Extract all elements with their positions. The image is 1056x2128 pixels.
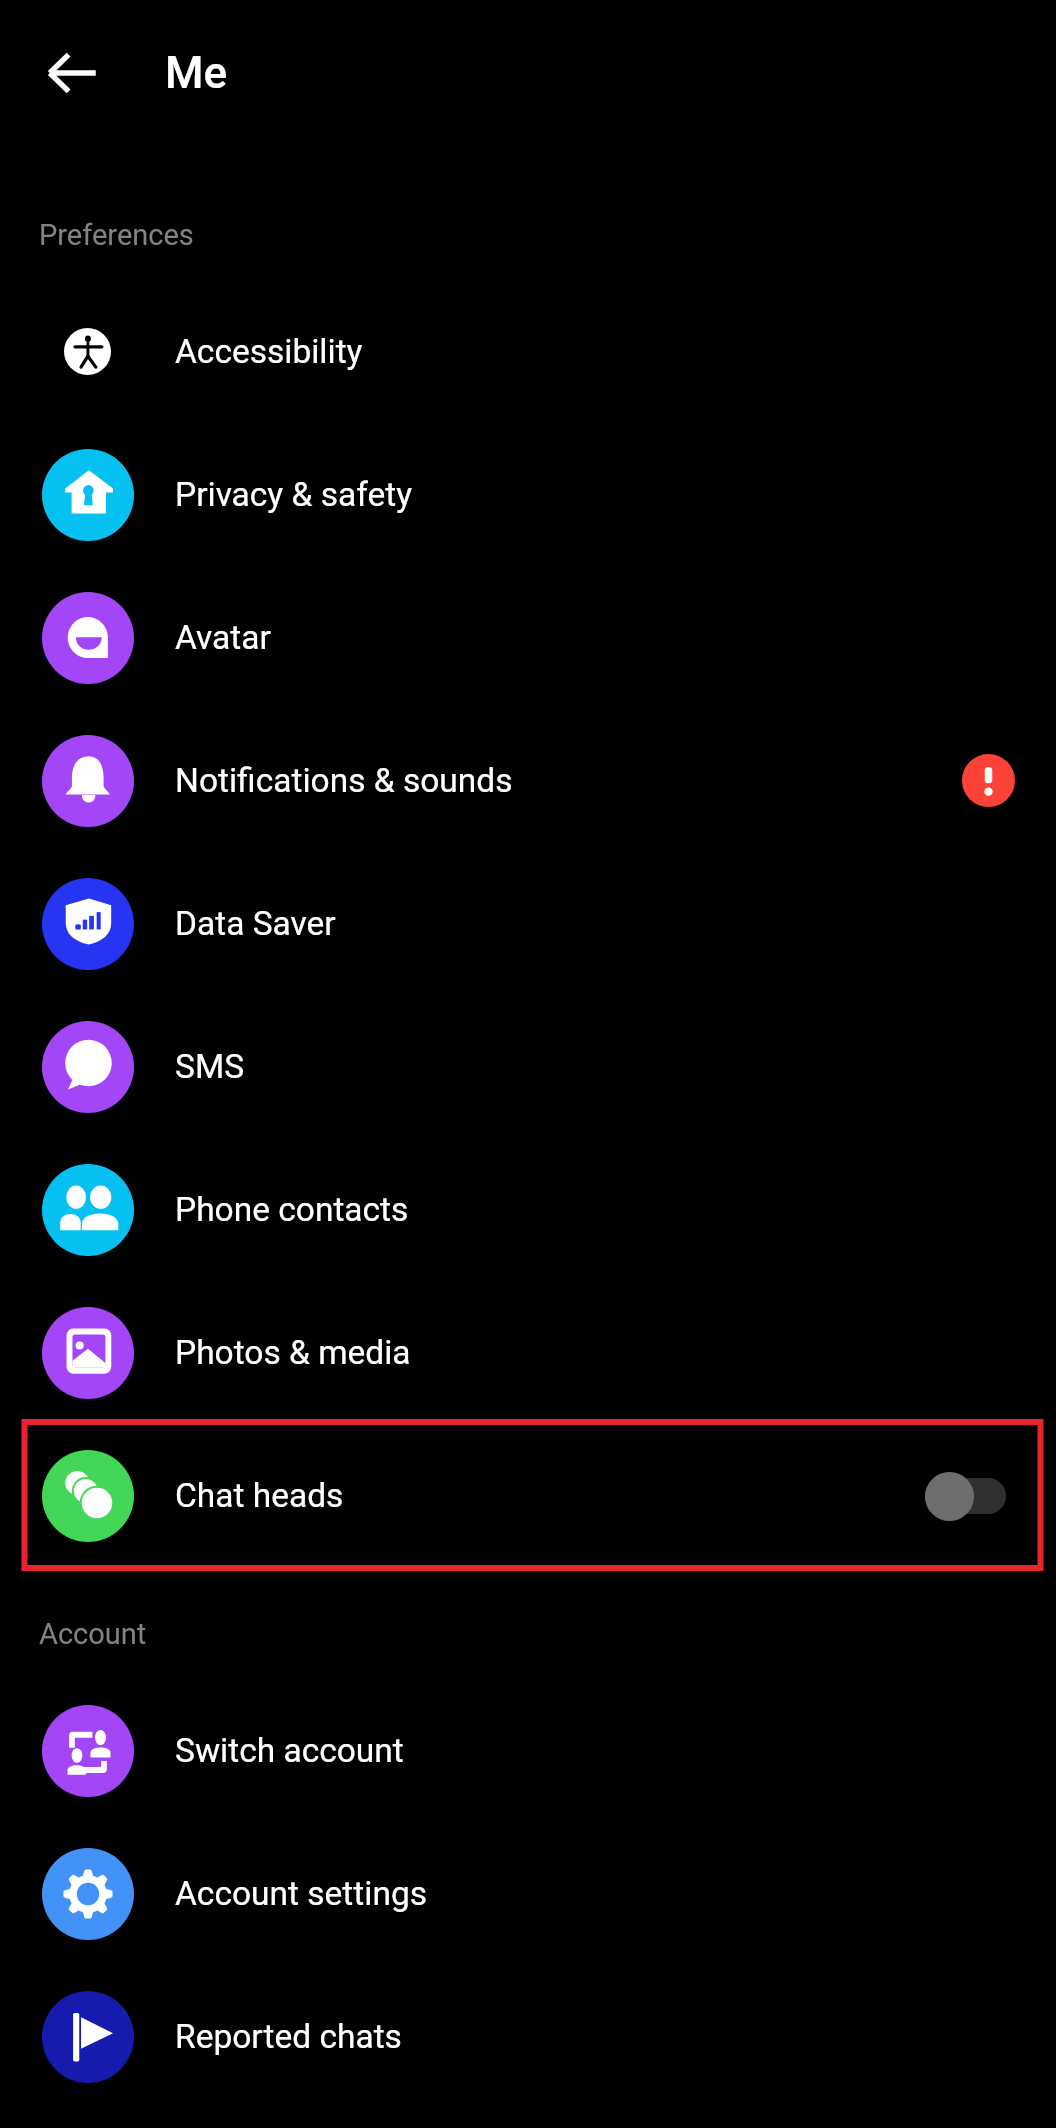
staticText: Accessibility — [175, 332, 363, 371]
button[interactable]: Back — [24, 27, 116, 119]
button[interactable]: Photos & media — [0, 1281, 1056, 1424]
button[interactable]: Reported chats — [0, 1965, 1056, 2108]
staticText: Switch account — [175, 1731, 404, 1770]
staticText: Data Saver — [175, 904, 336, 943]
staticText: Photos & media — [175, 1333, 411, 1372]
staticText: Notifications & sounds — [175, 761, 513, 800]
button[interactable]: Phone contacts — [0, 1138, 1056, 1281]
button[interactable]: Chat heads — [0, 1424, 1056, 1567]
button[interactable]: Privacy & safety — [0, 423, 1056, 566]
other: Warning — [962, 754, 1015, 807]
button[interactable]: Toggle chat heads — [925, 1471, 1006, 1521]
staticText: Preferences — [39, 218, 194, 252]
button[interactable]: SMS — [0, 995, 1056, 1138]
button[interactable]: Accessibility — [0, 280, 1056, 423]
button[interactable]: Data Saver — [0, 852, 1056, 995]
button[interactable]: Avatar — [0, 566, 1056, 709]
staticText: Privacy & safety — [175, 475, 413, 514]
button[interactable]: Switch account — [0, 1679, 1056, 1822]
staticText: Avatar — [175, 618, 271, 657]
staticText: Reported chats — [175, 2017, 402, 2056]
staticText: Account settings — [175, 1874, 427, 1913]
button[interactable]: Notifications & sounds — [0, 709, 1056, 852]
button[interactable]: Account settings — [0, 1822, 1056, 1965]
staticText: Account — [39, 1617, 147, 1651]
staticText: Me — [165, 47, 228, 99]
staticText: Chat heads — [175, 1476, 344, 1515]
staticText: SMS — [175, 1047, 245, 1086]
staticText: Phone contacts — [175, 1190, 409, 1229]
